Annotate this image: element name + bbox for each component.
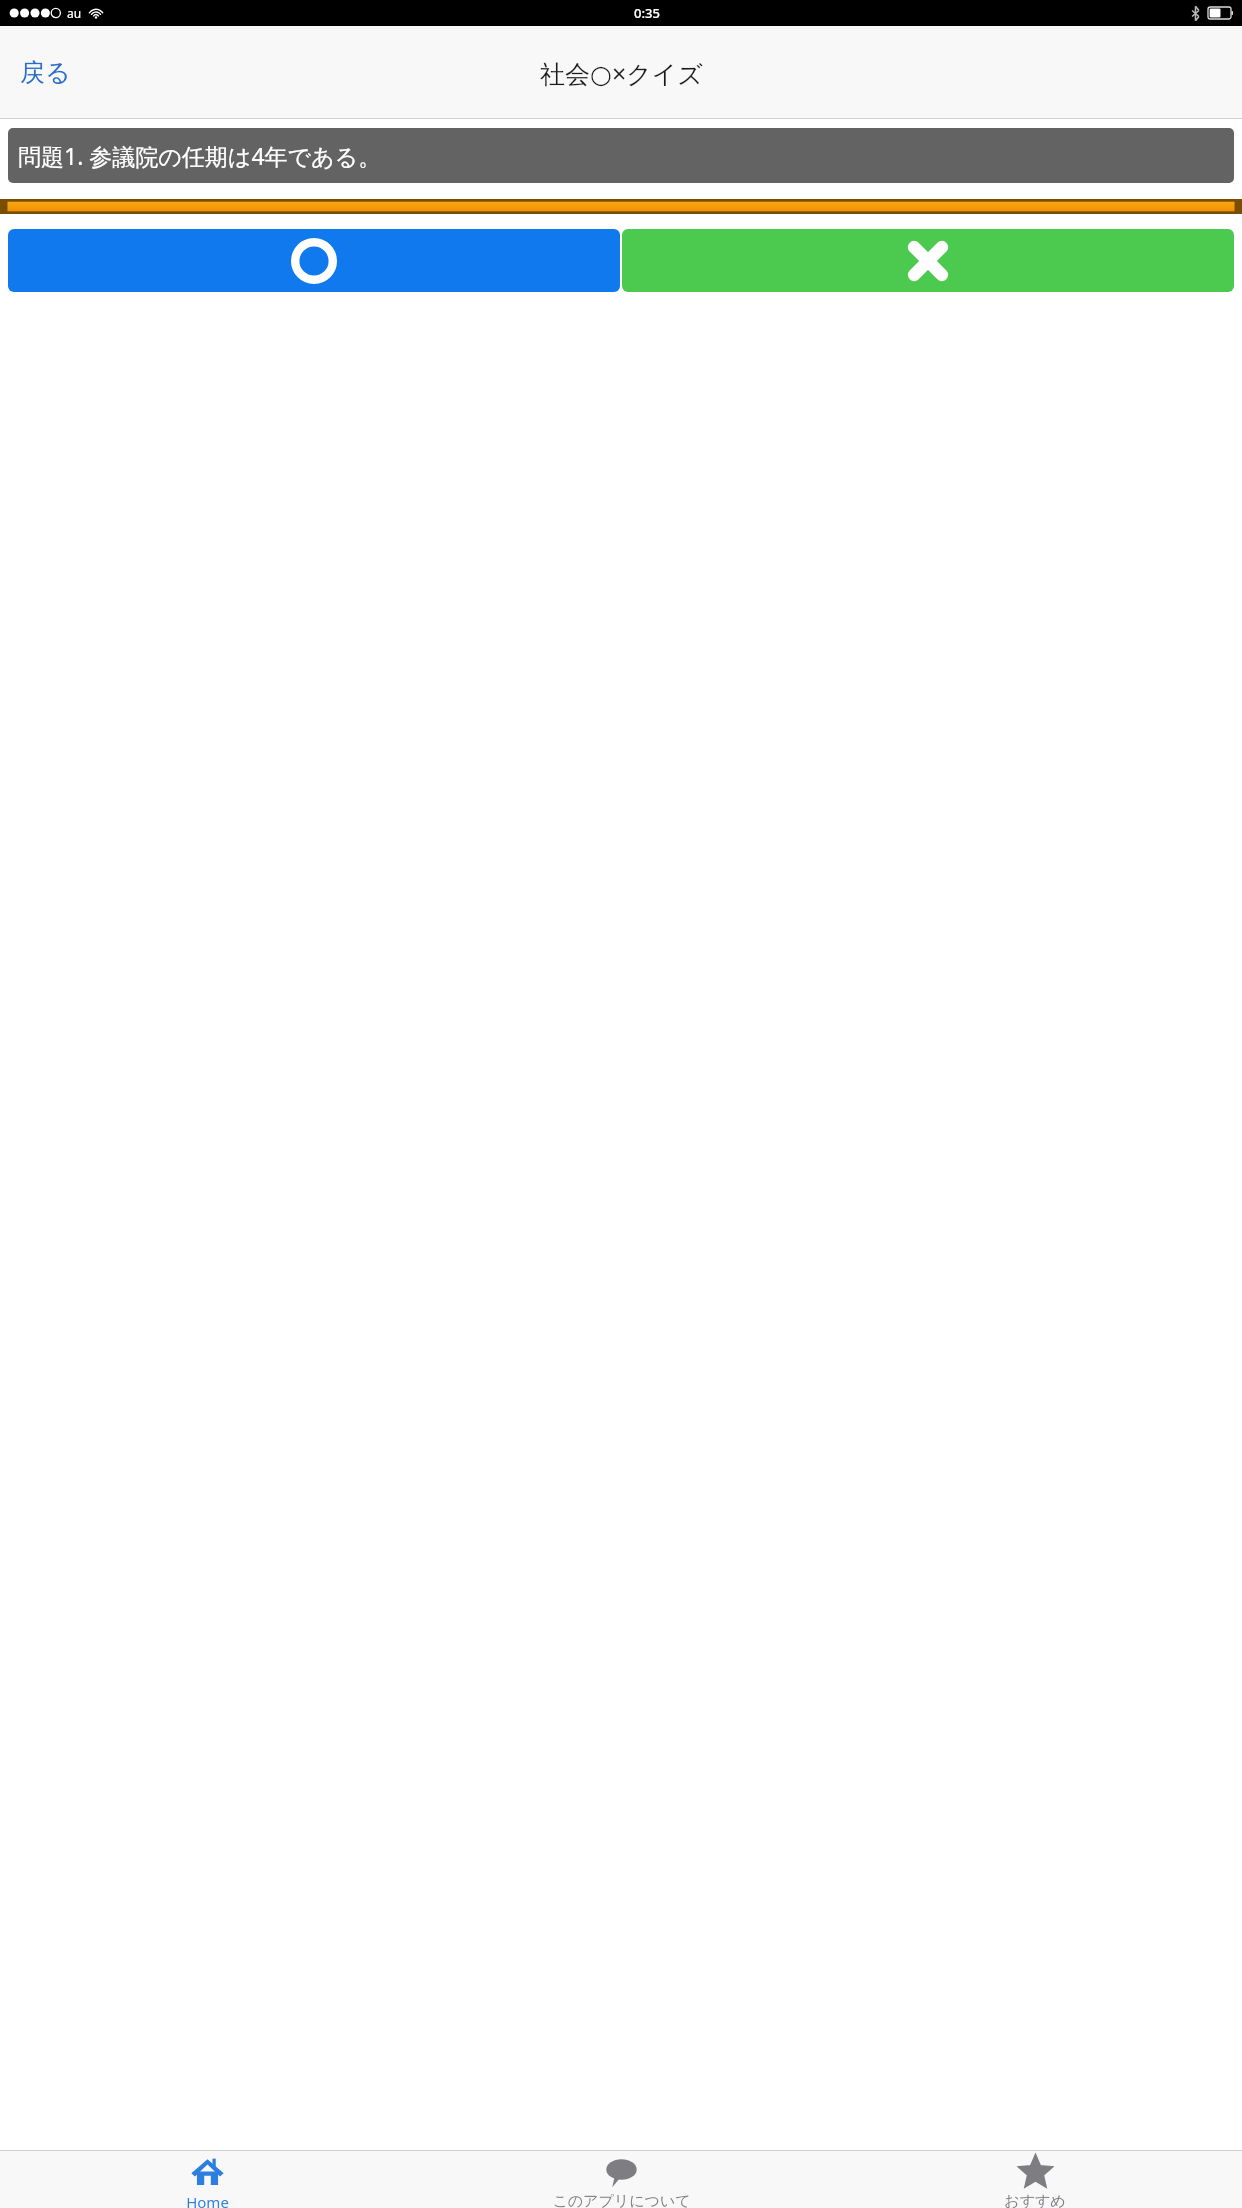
staticText: 0:35 xyxy=(634,4,660,22)
staticText: Home xyxy=(186,2192,229,2208)
button[interactable]: このアプリについて xyxy=(414,2151,828,2208)
button[interactable]: おすすめ xyxy=(828,2151,1242,2208)
button[interactable]: Home xyxy=(0,2151,414,2208)
staticText: au xyxy=(67,5,82,21)
staticText: 戻る xyxy=(20,57,71,88)
staticText: 社会○×クイズ xyxy=(540,56,703,90)
button[interactable]: 戻る xyxy=(10,49,81,96)
staticText: おすすめ xyxy=(1004,2192,1066,2208)
button[interactable]: Batsu, answer false xyxy=(622,229,1234,292)
staticText: このアプリについて xyxy=(552,2192,691,2208)
button[interactable]: Maru, answer true xyxy=(8,229,620,292)
staticText: 問題1. 参議院の任期は4年である。 xyxy=(18,140,382,171)
